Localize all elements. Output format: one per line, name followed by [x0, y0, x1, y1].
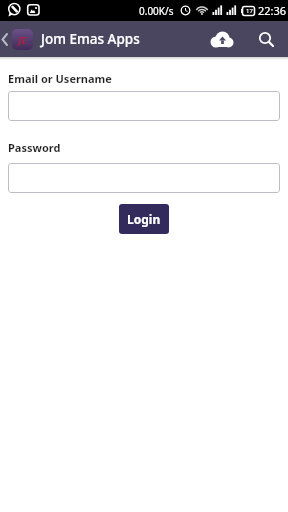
- staticText: 22:36: [258, 3, 287, 18]
- button[interactable]: JE: [12, 29, 33, 50]
- staticText: 0.00K/s: [139, 4, 174, 18]
- button[interactable]: [8, 91, 280, 121]
- button[interactable]: [8, 163, 280, 193]
- staticText: Email or Username: [8, 71, 112, 86]
- button[interactable]: [208, 31, 236, 48]
- staticText: Login: [127, 211, 161, 227]
- button[interactable]: [1, 33, 9, 46]
- button[interactable]: Login: [119, 204, 169, 234]
- staticText: Jom Emas Apps: [41, 30, 140, 48]
- staticText: Password: [8, 140, 61, 155]
- staticText: 17: [246, 7, 253, 15]
- staticText: JE: [18, 34, 28, 46]
- button[interactable]: [258, 31, 276, 49]
